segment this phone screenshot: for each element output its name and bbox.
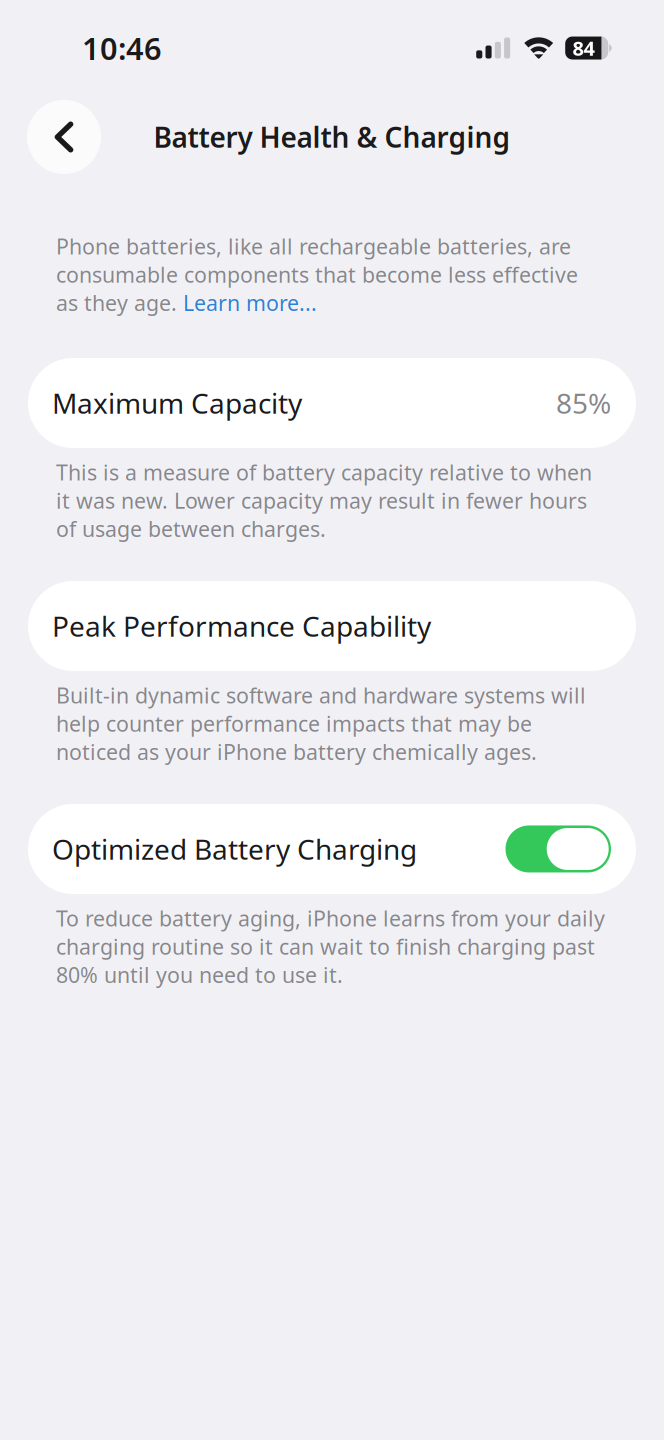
- staticText: 84: [572, 35, 594, 61]
- button[interactable]: Learn more...: [185, 292, 316, 314]
- button[interactable]: Optimized Battery Charging: [28, 804, 636, 894]
- staticText: Maximum Capacity: [52, 384, 302, 422]
- staticText: To reduce battery aging, iPhone learns f…: [56, 904, 605, 989]
- button[interactable]: Maximum Capacity: [28, 358, 636, 448]
- staticText: Peak Performance Capability: [52, 607, 431, 645]
- staticText: 85%: [556, 384, 611, 422]
- button[interactable]: Peak Performance Capability: [28, 581, 636, 671]
- staticText: Optimized Battery Charging: [52, 830, 417, 868]
- button[interactable]: Back: [27, 100, 101, 174]
- staticText: Built-in dynamic software and hardware s…: [56, 681, 586, 766]
- staticText: Phone batteries, like all rechargeable b…: [56, 232, 578, 317]
- staticText: 10:46: [82, 28, 162, 68]
- staticText: This is a measure of battery capacity re…: [56, 458, 592, 543]
- staticText: Battery Health & Charging: [153, 118, 510, 156]
